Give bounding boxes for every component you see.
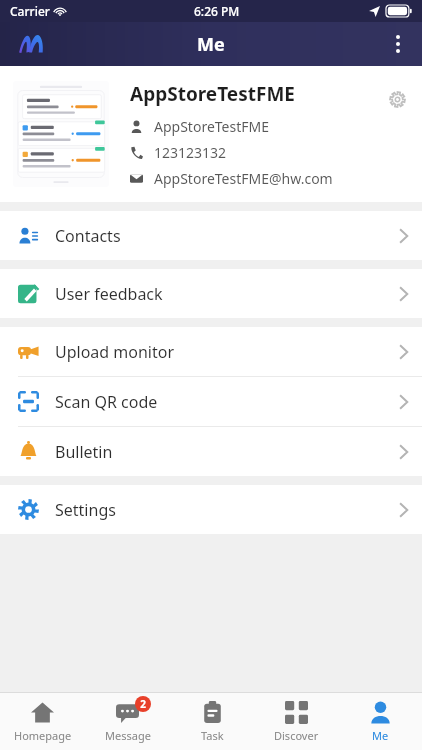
staticText: User feedback bbox=[55, 283, 163, 305]
staticText: 6:26 PM bbox=[194, 3, 240, 19]
staticText: AppStoreTestFME bbox=[130, 81, 295, 107]
button[interactable]: User feedback bbox=[0, 269, 422, 318]
button[interactable]: Homepage bbox=[0, 693, 85, 750]
other: App logo bbox=[18, 30, 46, 58]
staticText: Task bbox=[201, 728, 224, 743]
button[interactable]: Bulletin bbox=[0, 427, 422, 476]
staticText: Discover bbox=[274, 728, 319, 743]
staticText: Contacts bbox=[55, 225, 121, 247]
staticText: Me bbox=[372, 728, 389, 743]
staticText: AppStoreTestFME bbox=[154, 117, 269, 136]
staticText: Settings bbox=[55, 499, 116, 521]
staticText: AppStoreTestFME@hw.com bbox=[154, 169, 333, 188]
button[interactable]: AppStoreTestFME bbox=[0, 66, 422, 202]
button[interactable]: 2 bbox=[85, 693, 170, 750]
button[interactable]: More options bbox=[374, 22, 422, 66]
button[interactable]: Settings bbox=[0, 485, 422, 534]
button[interactable]: Upload monitor bbox=[0, 327, 422, 376]
button[interactable]: Scan QR code bbox=[0, 377, 422, 426]
button[interactable]: Contacts bbox=[0, 211, 422, 260]
staticText: Message bbox=[105, 728, 151, 743]
button[interactable]: Task bbox=[170, 693, 254, 750]
staticText: Bulletin bbox=[55, 441, 113, 463]
staticText: Scan QR code bbox=[55, 391, 158, 413]
staticText: Me bbox=[197, 32, 225, 57]
button[interactable]: Discover bbox=[254, 693, 338, 750]
staticText: 2 bbox=[140, 697, 146, 711]
staticText: 123123132 bbox=[154, 143, 227, 162]
staticText: Upload monitor bbox=[55, 341, 175, 363]
button[interactable]: Profile settings bbox=[382, 84, 412, 114]
button[interactable]: Me bbox=[338, 693, 422, 750]
staticText: Carrier bbox=[10, 3, 50, 19]
staticText: Homepage bbox=[14, 728, 72, 743]
